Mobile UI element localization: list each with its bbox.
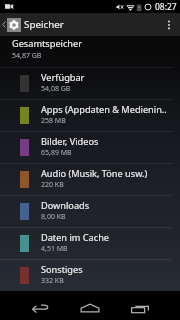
staticText: 220 KB: [41, 180, 64, 190]
staticText: 54,87 GB: [12, 51, 42, 61]
staticText: Apps (Appdaten & Medienin..: [41, 103, 167, 116]
staticText: Daten im Cache: [41, 231, 110, 244]
button[interactable]: More options: [161, 13, 177, 36]
button[interactable]: Recent apps: [115, 291, 165, 320]
button[interactable]: Back: [0, 13, 7, 36]
button[interactable]: Daten im Cache: [0, 228, 180, 259]
button[interactable]: Sonstiges: [0, 260, 180, 291]
staticText: 65,89 MB: [41, 148, 72, 158]
button[interactable]: Apps (Appdaten & Medienin..: [0, 100, 180, 131]
staticText: 258 MB: [41, 116, 66, 126]
staticText: 4,51 MB: [41, 244, 68, 254]
staticText: 8,00 KB: [41, 212, 66, 222]
button[interactable]: Audio (Musik, Töne usw.): [0, 164, 180, 195]
button[interactable]: Downloads: [0, 196, 180, 227]
staticText: Gesamtspeicher: [12, 37, 82, 50]
staticText: Sonstiges: [41, 263, 83, 276]
button[interactable]: Home: [65, 291, 115, 320]
staticText: Speicher: [24, 18, 64, 31]
button[interactable]: Bilder, Videos: [0, 132, 180, 163]
button[interactable]: Verfügbar: [0, 68, 180, 99]
button[interactable]: Settings: [7, 18, 21, 32]
staticText: 08:27: [155, 1, 177, 13]
staticText: Audio (Musik, Töne usw.): [41, 167, 148, 180]
button[interactable]: Back: [15, 291, 65, 320]
staticText: Verfügbar: [41, 71, 85, 84]
staticText: Bilder, Videos: [41, 135, 99, 148]
staticText: 54,08 GB: [41, 84, 71, 94]
staticText: Downloads: [41, 199, 90, 212]
staticText: 332 KB: [41, 276, 64, 286]
